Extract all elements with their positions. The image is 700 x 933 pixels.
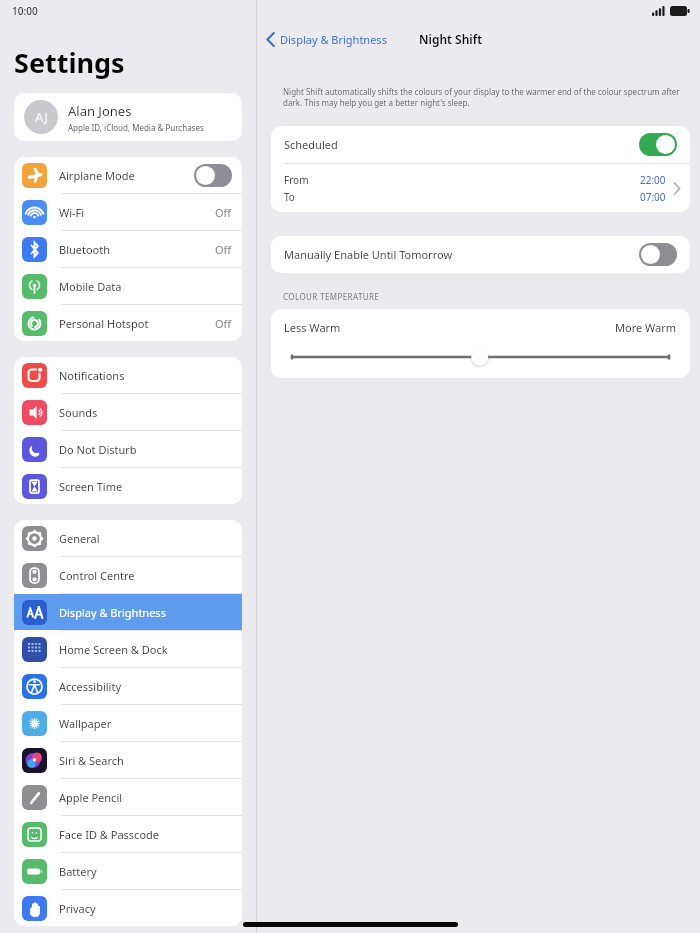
staticText: 10:00 (12, 4, 38, 18)
button[interactable]: Notifications (14, 357, 242, 393)
button[interactable]: Siri & Search (14, 742, 242, 778)
staticText: Home Screen & Dock (59, 642, 168, 657)
staticText: More Warm (615, 320, 677, 335)
button[interactable]: Battery (14, 853, 242, 889)
staticText: Privacy (59, 901, 96, 916)
button[interactable]: Personal Hotspot (14, 305, 242, 341)
button[interactable]: Scheduled (271, 126, 690, 163)
staticText: Manually Enable Until Tomorrow (284, 247, 453, 262)
staticText: Airplane Mode (59, 168, 135, 183)
staticText: Display & Brightness (280, 32, 387, 47)
staticText: Less Warm (284, 320, 341, 335)
staticText: General (59, 531, 100, 546)
staticText: Off (215, 316, 232, 331)
button[interactable]: Wallpaper (14, 705, 242, 741)
staticText: Wi-Fi (59, 205, 85, 220)
staticText: Apple Pencil (59, 790, 123, 805)
staticText: Display & Brightness (59, 605, 166, 620)
staticText: Wallpaper (59, 716, 112, 731)
button[interactable]: Apple Pencil (14, 779, 242, 815)
staticText: Night Shift automatically shifts the col… (283, 86, 680, 109)
staticText: Sounds (59, 405, 98, 420)
staticText: Face ID & Passcode (59, 827, 160, 842)
staticText: 07:00 (640, 190, 666, 204)
staticText: Settings (14, 44, 125, 81)
staticText: Control Centre (59, 568, 135, 583)
staticText: Screen Time (59, 479, 123, 494)
staticText: AJ (35, 108, 48, 126)
staticText: Night Shift (419, 31, 483, 47)
button[interactable]: From (271, 164, 690, 212)
button[interactable]: Toggle off (639, 243, 677, 266)
button[interactable]: Control Centre (14, 557, 242, 593)
button[interactable]: Sounds (14, 394, 242, 430)
staticText: To (284, 190, 295, 204)
staticText: Bluetooth (59, 242, 111, 257)
staticText: Personal Hotspot (59, 316, 149, 331)
button[interactable]: Accessibility (14, 668, 242, 704)
button[interactable]: AJ (14, 93, 242, 141)
button[interactable]: Display & Brightness (257, 30, 393, 49)
button[interactable]: General (14, 520, 242, 556)
staticText: Battery (59, 864, 97, 879)
button[interactable]: Airplane Mode (14, 157, 242, 193)
button[interactable]: Face ID & Passcode (14, 816, 242, 852)
button[interactable]: Privacy (14, 890, 242, 926)
button[interactable]: Do Not Disturb (14, 431, 242, 467)
staticText: Alan Jones (68, 102, 132, 120)
button[interactable]: Display & Brightness (14, 594, 242, 630)
button[interactable]: Wi-Fi (14, 194, 242, 230)
button[interactable]: Screen Time (14, 468, 242, 504)
button[interactable]: Toggle off (194, 164, 232, 187)
staticText: Siri & Search (59, 753, 124, 768)
button[interactable]: Toggle on (639, 133, 677, 156)
staticText: Off (215, 205, 232, 220)
staticText: Scheduled (284, 137, 338, 152)
button[interactable]: Bluetooth (14, 231, 242, 267)
button[interactable]: Mobile Data (14, 268, 242, 304)
button[interactable]: Home Screen & Dock (14, 631, 242, 667)
staticText: Off (215, 242, 232, 257)
staticText: From (284, 173, 309, 187)
staticText: Mobile Data (59, 279, 122, 294)
staticText: COLOUR TEMPERATURE (283, 291, 380, 302)
button[interactable] (284, 347, 677, 367)
staticText: Accessibility (59, 679, 122, 694)
staticText: Do Not Disturb (59, 442, 137, 457)
staticText: Apple ID, iCloud, Media & Purchases (68, 122, 204, 133)
staticText: 22:00 (640, 173, 666, 187)
staticText: Notifications (59, 368, 125, 383)
button[interactable]: Manually Enable Until Tomorrow (271, 236, 690, 273)
